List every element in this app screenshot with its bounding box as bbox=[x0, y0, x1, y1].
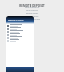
staticText: Deposit a Check bbox=[8, 19, 24, 22]
staticText: REMOTE DEPOSIT bbox=[19, 4, 45, 8]
button[interactable] bbox=[6, 27, 34, 30]
button[interactable] bbox=[6, 39, 34, 42]
button[interactable]: Deposit bbox=[6, 67, 34, 72]
staticText: Snap a photo of your check to deposit fu… bbox=[23, 6, 41, 21]
button[interactable] bbox=[6, 33, 34, 36]
button[interactable] bbox=[6, 30, 34, 33]
button[interactable] bbox=[6, 36, 34, 39]
button[interactable] bbox=[6, 24, 34, 27]
